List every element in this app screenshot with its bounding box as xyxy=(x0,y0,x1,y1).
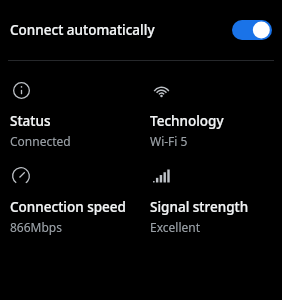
other: Status information xyxy=(10,79,32,101)
staticText: Connect automatically xyxy=(10,21,226,39)
staticText: Technology xyxy=(150,112,224,130)
other: Wi-Fi technology xyxy=(150,79,172,101)
button[interactable]: Connect automatically toggle, on xyxy=(232,20,272,40)
staticText: 866Mbps xyxy=(10,219,62,235)
staticText: Connection speed xyxy=(10,198,126,216)
button[interactable]: Wi-Fi technology xyxy=(141,79,282,149)
button[interactable]: Signal strength xyxy=(141,165,282,235)
staticText: Wi-Fi 5 xyxy=(150,133,188,149)
staticText: Connected xyxy=(10,133,71,149)
other: Connection speed xyxy=(10,165,32,187)
button[interactable]: Status information xyxy=(0,79,141,149)
staticText: Excellent xyxy=(150,219,201,235)
other: Signal strength xyxy=(150,165,172,187)
staticText: Status xyxy=(10,112,51,130)
staticText: Signal strength xyxy=(150,198,249,216)
button[interactable]: Connect automatically xyxy=(0,0,282,60)
button[interactable]: Connection speed xyxy=(0,165,141,235)
